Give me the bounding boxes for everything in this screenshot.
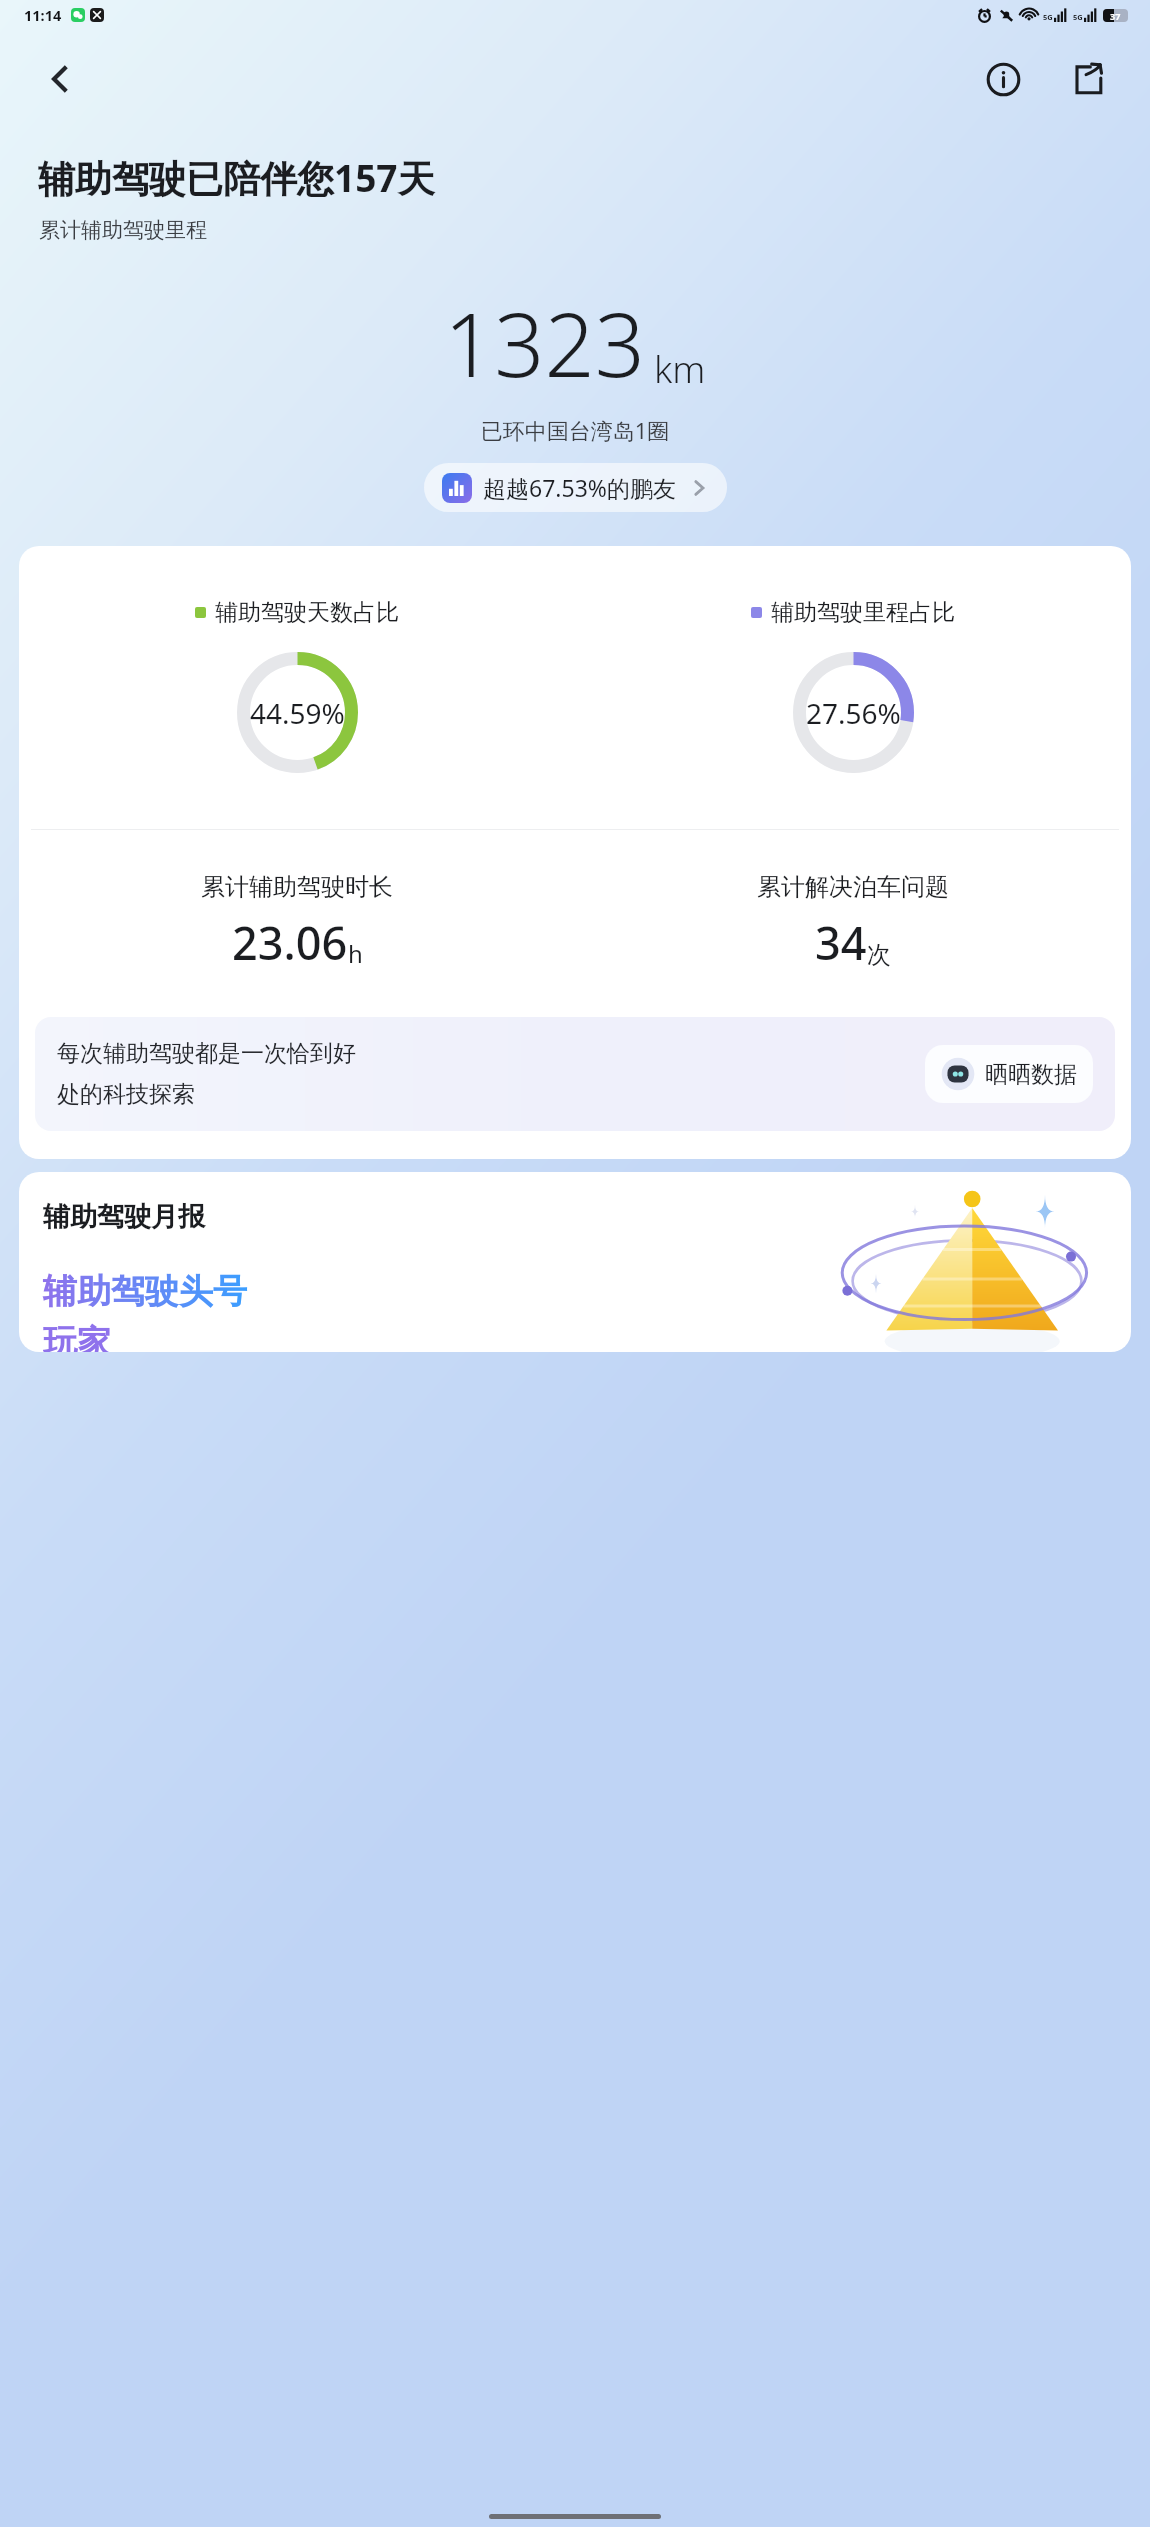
staticText: 已环中国台湾岛1圈 <box>0 415 1150 445</box>
staticText: 5G <box>1043 12 1053 22</box>
button[interactable]: 晒晒数据 <box>925 1045 1093 1103</box>
staticText: 1323 <box>444 283 645 403</box>
staticText: 37 <box>1110 10 1121 22</box>
staticText: km <box>654 343 706 393</box>
staticText: 晒晒数据 <box>985 1060 1077 1089</box>
staticText: 处的科技探索 <box>57 1080 195 1109</box>
staticText: 每次辅助驾驶都是一次恰到好 <box>57 1039 356 1068</box>
staticText: 11:14 <box>24 5 62 25</box>
staticText: 5G <box>1073 12 1083 22</box>
staticText: 累计辅助驾驶时长 <box>201 872 393 902</box>
staticText: 辅助驾驶已陪伴您157天 <box>38 152 435 203</box>
staticText: 次 <box>867 940 891 970</box>
staticText: 玩家 <box>43 1321 111 1352</box>
button[interactable]: 辅助驾驶月报 <box>19 1172 1131 1352</box>
staticText: 累计辅助驾驶里程 <box>39 217 207 243</box>
staticText: 44.59% <box>250 694 345 732</box>
staticText: 辅助驾驶头号 <box>43 1270 247 1313</box>
staticText: h <box>348 937 363 970</box>
button[interactable]: Back <box>34 53 86 105</box>
staticText: 27.56% <box>806 694 901 732</box>
staticText: 34 <box>815 912 867 973</box>
staticText: 辅助驾驶月报 <box>43 1200 205 1234</box>
staticText: 23.06 <box>232 912 348 973</box>
button[interactable]: Share <box>1060 52 1114 106</box>
button[interactable]: Info <box>976 52 1030 106</box>
staticText: 超越67.53%的鹏友 <box>483 472 676 503</box>
staticText: 辅助驾驶里程占比 <box>771 598 955 627</box>
button[interactable]: 超越67.53%的鹏友 <box>424 463 727 512</box>
staticText: 累计解决泊车问题 <box>757 872 949 902</box>
staticText: 辅助驾驶天数占比 <box>215 598 399 627</box>
